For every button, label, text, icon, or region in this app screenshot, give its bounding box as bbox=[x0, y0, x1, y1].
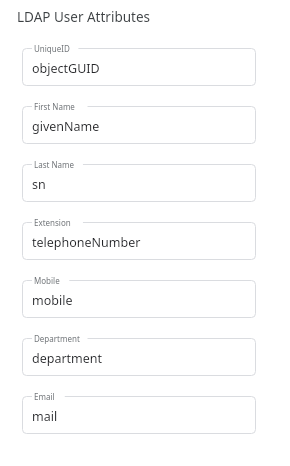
staticText: Last Name bbox=[34, 159, 75, 170]
staticText: mail bbox=[32, 408, 58, 425]
staticText: department bbox=[32, 350, 103, 367]
staticText: givenName bbox=[32, 118, 100, 135]
button[interactable]: Extension bbox=[22, 222, 256, 260]
staticText: telephoneNumber bbox=[32, 234, 141, 251]
button[interactable]: Mobile bbox=[22, 280, 256, 318]
button[interactable]: First Name bbox=[22, 106, 256, 144]
button[interactable]: Last Name bbox=[22, 164, 256, 202]
staticText: UniqueID bbox=[34, 43, 70, 54]
button[interactable]: Department bbox=[22, 338, 256, 376]
staticText: Email bbox=[34, 391, 55, 402]
staticText: LDAP User Attributes bbox=[17, 8, 151, 26]
staticText: Extension bbox=[34, 217, 71, 228]
button[interactable]: Email bbox=[22, 396, 256, 434]
staticText: sn bbox=[32, 176, 46, 193]
staticText: Department bbox=[34, 333, 80, 344]
staticText: objectGUID bbox=[32, 60, 100, 77]
staticText: mobile bbox=[32, 292, 73, 309]
button[interactable]: UniqueID bbox=[22, 48, 256, 86]
staticText: Mobile bbox=[34, 275, 60, 286]
staticText: First Name bbox=[34, 101, 75, 112]
